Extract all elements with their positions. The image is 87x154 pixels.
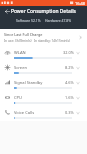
staticText: In standby: 14h15min(s) [34, 39, 70, 43]
button[interactable]: Since Last Full Charge [0, 29, 87, 46]
staticText: WLAN [14, 50, 26, 56]
button[interactable]: WLAN [0, 46, 87, 61]
staticText: 16:48 [75, 1, 85, 6]
staticText: Voice Calls [14, 110, 35, 116]
staticText: Software 52.1% [16, 18, 41, 23]
staticText: 0.3% [65, 110, 74, 115]
staticText: 1.6% [65, 95, 74, 100]
button[interactable]: Back [2, 6, 13, 17]
staticText: Hardware 47.8% [45, 18, 72, 23]
button[interactable]: Signal Standby [0, 76, 87, 91]
staticText: Signal Standby [14, 80, 43, 86]
button[interactable]: CPU [0, 91, 87, 106]
staticText: Screen [14, 65, 27, 71]
staticText: In use: 3h39min(s) [4, 39, 32, 43]
staticText: 32.0% [63, 50, 74, 55]
staticText: 4.6% [65, 80, 74, 85]
staticText: CPU [14, 95, 23, 101]
staticText: Power Consumption Details [11, 8, 76, 15]
staticText: 8.2% [65, 65, 74, 70]
button[interactable]: Screen [0, 61, 87, 76]
staticText: Since Last Full Charge [4, 32, 43, 37]
button[interactable]: Voice Calls [0, 106, 87, 121]
